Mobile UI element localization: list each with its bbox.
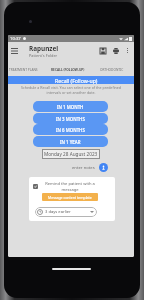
staticText: Rapunzel: [29, 44, 59, 53]
button[interactable]: ORTHODONTIC: [93, 64, 131, 75]
button[interactable]: 3 days earlier: [35, 207, 97, 217]
button[interactable]: IN 6 MONTHS: [33, 124, 108, 135]
button[interactable]: TREATMENT PLANS: [8, 64, 42, 75]
staticText: IN 6 MONTHS: [56, 127, 85, 133]
button[interactable]: Message content template: [42, 193, 98, 201]
staticText: 10:37: [10, 36, 21, 42]
staticText: IN 3 MONTHS: [56, 116, 85, 122]
staticText: Remind the patient with a message: [42, 181, 98, 192]
staticText: ORTHODONTIC: [100, 68, 124, 72]
staticText: Monday 28 August 2023: [44, 151, 98, 157]
button[interactable]: IN 3 MONTHS: [33, 113, 108, 124]
button[interactable]: Save record: [96, 42, 109, 59]
button[interactable]: Monday 28 August 2023: [42, 149, 100, 159]
staticText: Recall (Follow-up): [55, 77, 98, 84]
button[interactable]: Print: [109, 42, 122, 59]
button[interactable]: Voice input: [99, 163, 108, 172]
staticText: TREATMENT PLANS: [9, 68, 38, 72]
staticText: 3 days earlier: [45, 209, 71, 215]
staticText: enter notes: [72, 165, 95, 171]
staticText: Message content template: [48, 195, 92, 200]
button[interactable]: IN 1 YEAR: [33, 136, 108, 147]
button[interactable]: Navigation menu: [8, 42, 21, 59]
button[interactable]: RECALL (FOLLOW-UP): [49, 64, 87, 75]
button[interactable]: IN 1 MONTH: [33, 101, 108, 112]
staticText: RECALL (FOLLOW-UP): [51, 68, 85, 72]
staticText: Patient's Folder: [29, 53, 58, 58]
button[interactable]: More options: [122, 42, 132, 59]
staticText: Schedule a Recall visit. You can select …: [17, 85, 125, 95]
staticText: IN 1 YEAR: [60, 139, 81, 145]
staticText: IN 1 MONTH: [57, 104, 84, 110]
button[interactable]: Remind the patient: [33, 184, 38, 189]
